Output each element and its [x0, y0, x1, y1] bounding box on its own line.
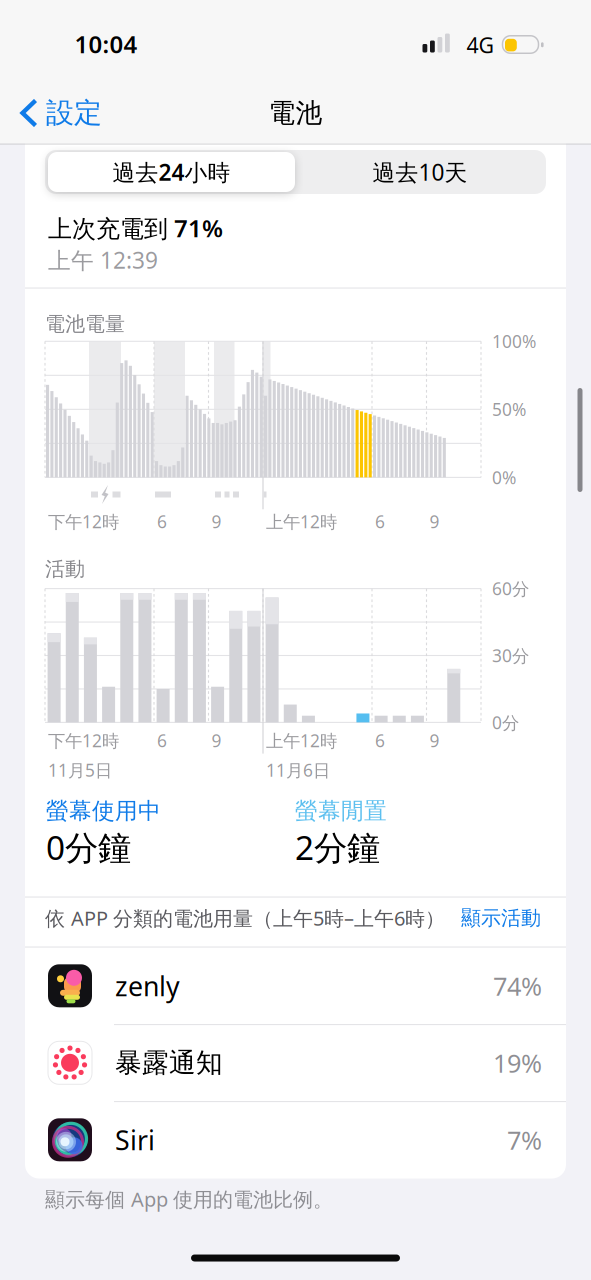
staticText: 6 — [375, 729, 385, 752]
staticText: 11月6日 — [266, 758, 330, 781]
staticText: 螢幕閒置 — [295, 797, 387, 825]
staticText: 過去10天 — [372, 157, 467, 187]
staticText: 下午12時 — [48, 729, 119, 752]
staticText: 顯示活動 — [461, 906, 541, 930]
staticText: 10:04 — [74, 28, 137, 60]
staticText: 11月5日 — [48, 758, 112, 781]
staticText: zenly — [115, 968, 180, 1003]
staticText: 過去24小時 — [112, 157, 230, 187]
staticText: 30分 — [492, 644, 529, 667]
staticText: 顯示每個 App 使用的電池比例。 — [45, 1186, 333, 1212]
staticText: 0% — [492, 466, 516, 489]
staticText: 下午12時 — [48, 510, 119, 533]
staticText: 4G — [466, 31, 494, 59]
staticText: 6 — [157, 510, 167, 533]
staticText: 電池 — [268, 97, 322, 129]
button[interactable]: 設定 — [20, 96, 102, 130]
staticText: 上次充電到 71% — [48, 212, 223, 244]
button[interactable]: 暴露通知 — [25, 1024, 566, 1101]
staticText: 0分 — [492, 711, 519, 734]
staticText: 100% — [492, 330, 536, 353]
button[interactable]: Siri — [25, 1101, 566, 1178]
staticText: 2分鐘 — [295, 825, 380, 869]
staticText: 9 — [211, 729, 221, 752]
staticText: 暴露通知 — [115, 1046, 223, 1079]
staticText: 上午12時 — [266, 510, 337, 533]
staticText: 9 — [429, 510, 439, 533]
staticText: 9 — [211, 510, 221, 533]
staticText: 60分 — [492, 577, 529, 600]
button[interactable]: 顯示活動 — [461, 906, 541, 930]
staticText: 74% — [493, 969, 542, 1003]
staticText: 上午 12:39 — [48, 245, 158, 275]
staticText: 6 — [157, 729, 167, 752]
button[interactable]: 過去24小時 — [48, 152, 295, 192]
staticText: 依 APP 分類的電池用量（上午5時–上午6時） — [45, 905, 445, 931]
button[interactable]: zenly — [25, 947, 566, 1024]
staticText: 活動 — [45, 557, 85, 581]
staticText: 9 — [429, 729, 439, 752]
staticText: 6 — [375, 510, 385, 533]
button[interactable]: 過去10天 — [300, 152, 540, 192]
staticText: 0分鐘 — [46, 825, 131, 869]
staticText: 電池電量 — [45, 312, 125, 336]
staticText: 7% — [507, 1123, 542, 1157]
staticText: Siri — [115, 1122, 155, 1157]
staticText: 50% — [492, 398, 526, 421]
staticText: 螢幕使用中 — [46, 797, 161, 825]
staticText: 19% — [493, 1046, 542, 1080]
staticText: 上午12時 — [266, 729, 337, 752]
staticText: 設定 — [46, 96, 102, 130]
